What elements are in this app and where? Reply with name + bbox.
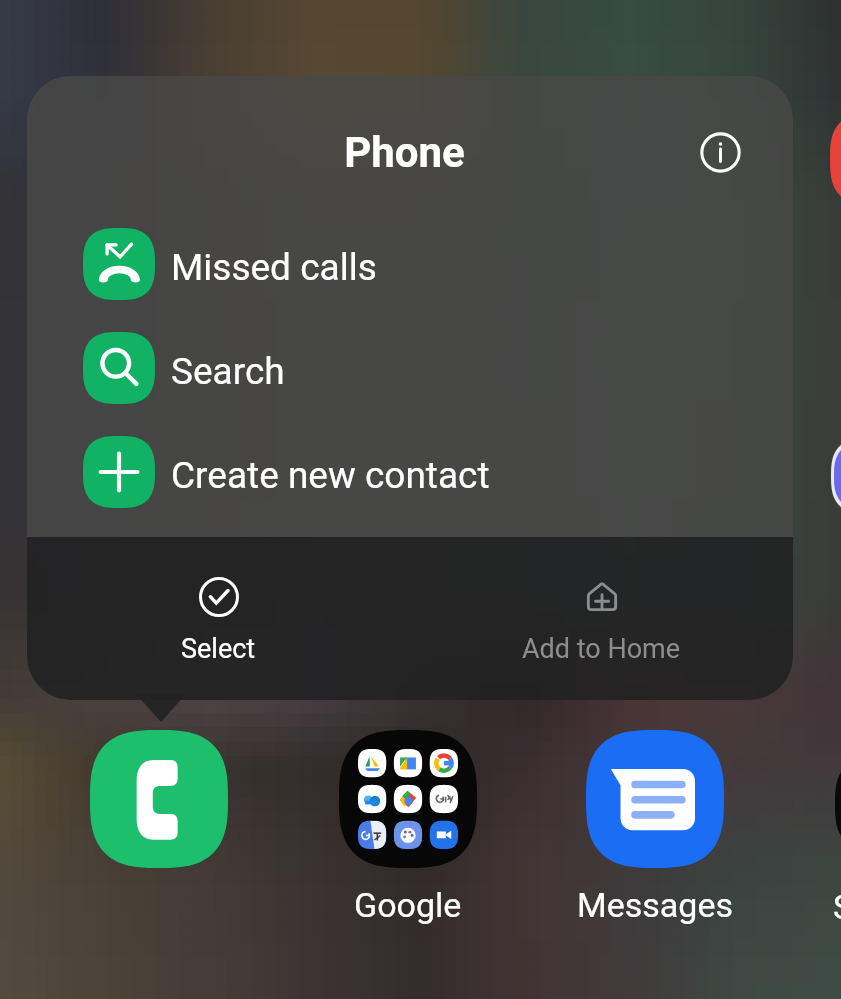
staticText: Missed calls	[171, 246, 377, 289]
staticText: Select	[181, 633, 256, 665]
staticText: Google	[354, 885, 462, 925]
button[interactable]: Google	[277, 730, 539, 925]
staticText: Add to Home	[522, 633, 681, 665]
button[interactable]: Messages	[524, 730, 786, 925]
staticText: Phone	[344, 128, 465, 177]
staticText: Search	[171, 350, 285, 393]
button[interactable]: Missed calls	[27, 212, 793, 316]
staticText: Create new contact	[171, 454, 490, 497]
staticText: Messages	[577, 885, 733, 925]
button[interactable]: Add to Home	[410, 576, 793, 665]
button[interactable]: App info	[693, 125, 747, 179]
button[interactable]: Search	[27, 316, 793, 420]
button[interactable]: Select	[27, 576, 410, 665]
button[interactable]: Create new contact	[27, 420, 793, 524]
button[interactable]: Phone	[90, 730, 228, 868]
staticText: Settings	[833, 887, 841, 927]
